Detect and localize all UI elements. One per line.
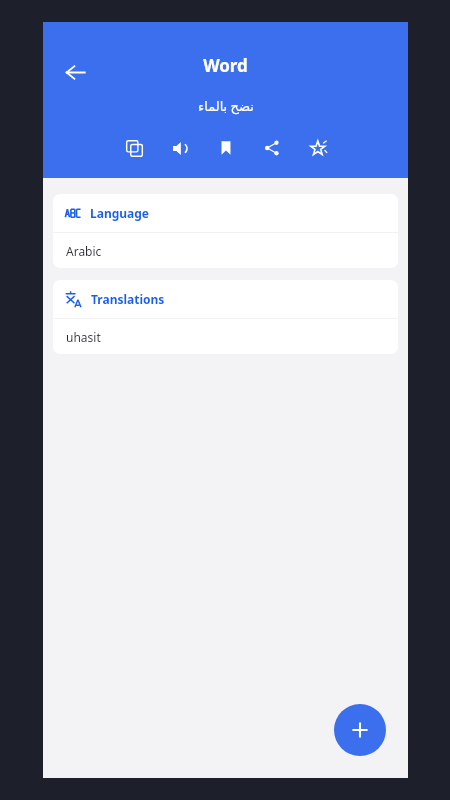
button[interactable]: Language	[53, 194, 398, 268]
staticText: Arabic	[66, 243, 102, 259]
button[interactable]: Favorite	[303, 133, 333, 163]
staticText: Translations	[91, 291, 165, 307]
button[interactable]: Copy	[119, 133, 149, 163]
button[interactable]: Play pronunciation	[165, 133, 195, 163]
button[interactable]: Add	[334, 704, 386, 756]
staticText: Language	[90, 205, 150, 221]
staticText: Word	[203, 54, 248, 77]
staticText: نضح بالماء	[198, 97, 254, 115]
button[interactable]: Back	[53, 50, 97, 94]
button[interactable]: Bookmark	[211, 133, 241, 163]
button[interactable]: Translations	[53, 280, 398, 354]
staticText: uhasit	[66, 329, 101, 345]
button[interactable]: Share	[257, 133, 287, 163]
